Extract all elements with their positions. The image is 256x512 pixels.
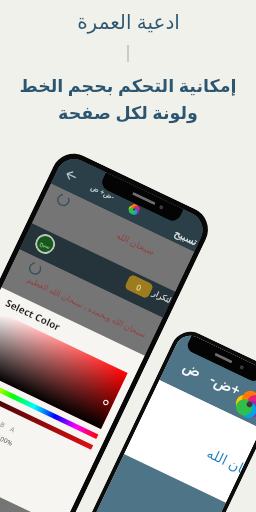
staticText: سبحان الله bbox=[115, 229, 157, 257]
staticText: ولونة لكل صفحة bbox=[58, 100, 198, 124]
staticText: 0 bbox=[135, 281, 144, 293]
staticText: تسبيح bbox=[172, 227, 200, 249]
button[interactable]: Change colour bbox=[127, 202, 142, 217]
staticText: 221 17 18 100% bbox=[0, 411, 15, 448]
staticText: التكرار bbox=[151, 288, 173, 305]
button[interactable]: Back bbox=[63, 167, 79, 183]
staticText: ادعية العمرة bbox=[77, 8, 180, 35]
staticText: R G B A bbox=[0, 410, 17, 435]
staticText: Select Color bbox=[3, 296, 63, 334]
staticText: سبح bbox=[39, 239, 52, 250]
staticText: إمكانية التحكم بحجم الخط bbox=[19, 73, 237, 97]
staticText: سبحان الله وبحمده ، سبحان الله العظيم bbox=[25, 273, 148, 340]
staticText: ض+ ض- bbox=[89, 183, 117, 203]
button[interactable]: Tasbih counter bbox=[32, 231, 58, 257]
staticText: سبحان الله bbox=[204, 443, 247, 477]
staticText: ض- ض+ bbox=[180, 355, 245, 400]
button[interactable]: Change colour bbox=[231, 386, 256, 423]
